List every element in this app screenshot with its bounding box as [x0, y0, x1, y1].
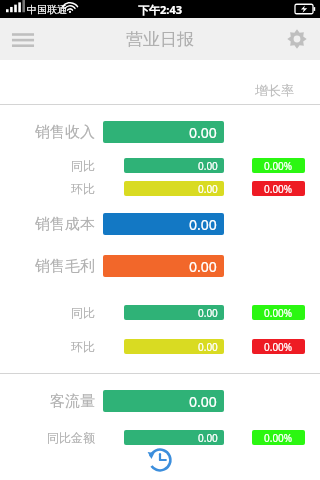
staticText: 0.00% [264, 340, 293, 354]
staticText: 同比 [10, 305, 95, 320]
staticText: 0.00% [264, 306, 293, 320]
staticText: 0.00 [189, 123, 217, 142]
staticText: 环比 [10, 339, 95, 354]
button[interactable]: 环比金额 [0, 452, 320, 480]
staticText: 0.00% [264, 431, 293, 445]
staticText: 0.00 [189, 392, 217, 411]
staticText: 0.00 [198, 431, 218, 445]
staticText: 0.00 [189, 215, 217, 234]
staticText: 营业日报 [126, 29, 194, 50]
button[interactable]: 环比 [0, 177, 320, 199]
staticText: 环比 [10, 181, 95, 196]
button[interactable]: Menu [0, 18, 46, 60]
staticText: 0.00 [198, 182, 218, 196]
staticText: 0.00 [189, 257, 217, 276]
staticText: 中国联通 [27, 3, 67, 16]
button[interactable]: 销售毛利 [0, 245, 320, 287]
staticText: 0.00 [198, 159, 218, 173]
button[interactable]: 销售成本 [0, 203, 320, 245]
staticText: 0.00 [198, 340, 218, 354]
button[interactable]: 同比金额 [0, 422, 320, 452]
staticText: 同比 [10, 158, 95, 173]
staticText: 0.00% [264, 182, 293, 196]
button[interactable]: Settings [274, 18, 320, 60]
staticText: 0.00% [264, 159, 293, 173]
staticText: 下午2:43 [138, 2, 182, 17]
button[interactable]: 环比 [0, 329, 320, 363]
staticText: 销售收入 [10, 123, 95, 142]
staticText: 客流量 [10, 392, 95, 411]
staticText: 销售成本 [10, 215, 95, 234]
staticText: 同比金额 [10, 430, 95, 445]
button[interactable]: 客流量 [0, 380, 320, 422]
button[interactable]: 销售收入 [0, 111, 320, 153]
staticText: 销售毛利 [10, 257, 95, 276]
button[interactable]: 同比 [0, 153, 320, 177]
button[interactable]: Refresh history [145, 445, 175, 475]
button[interactable]: 同比 [0, 295, 320, 329]
staticText: 0.00 [198, 306, 218, 320]
staticText: 增长率 [255, 82, 294, 98]
